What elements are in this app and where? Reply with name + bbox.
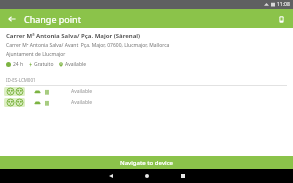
button[interactable]: Back <box>103 169 119 183</box>
staticText: 24 h <box>13 61 24 68</box>
button[interactable]: Home <box>139 169 155 183</box>
staticText: Change point <box>24 13 81 25</box>
staticText: Gratuito <box>34 61 54 68</box>
staticText: Carrer Mª Antonia Salva/ Pça. Major (Sàr… <box>6 32 141 40</box>
button[interactable]: Recents <box>175 169 191 183</box>
button[interactable]: Available <box>0 97 293 108</box>
staticText: ID-ES-LCM001 <box>6 77 36 83</box>
staticText: 11:08 <box>277 1 290 8</box>
button[interactable]: Back <box>5 12 19 26</box>
staticText: Available <box>71 88 93 95</box>
staticText: Ajuntament de Llucmajor <box>6 51 66 58</box>
staticText: Navigate to device <box>120 159 174 167</box>
button[interactable]: Charge info <box>274 12 288 26</box>
button[interactable]: Navigate to device <box>0 156 293 169</box>
button[interactable]: Available <box>0 86 293 97</box>
staticText: Available <box>65 61 87 68</box>
staticText: Carrer Mª Antonia Salva/ Avant Pça. Majo… <box>6 42 170 49</box>
staticText: Available <box>71 99 93 106</box>
